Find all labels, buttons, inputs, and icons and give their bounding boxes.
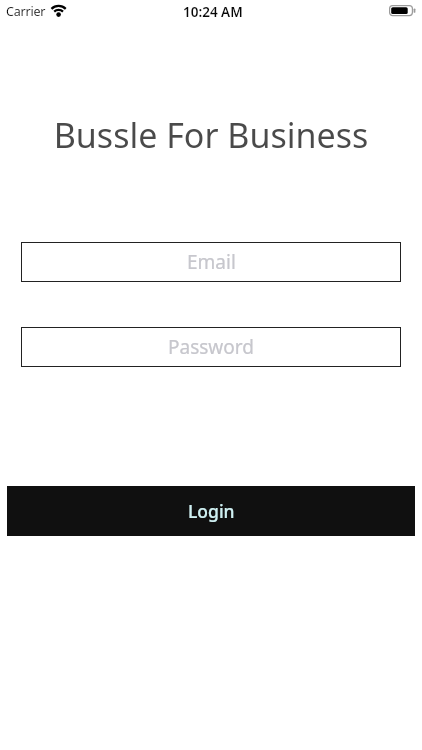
staticText: Email	[187, 249, 236, 275]
staticText: Carrier	[6, 3, 46, 20]
staticText: Password	[168, 334, 254, 360]
staticText: Bussle For Business	[0, 112, 422, 158]
button[interactable]: Login	[7, 486, 415, 536]
staticText: Login	[188, 499, 235, 523]
staticText: 10:24 AM	[183, 3, 243, 21]
button[interactable]: Password	[21, 327, 401, 367]
button[interactable]: Email	[21, 242, 401, 282]
